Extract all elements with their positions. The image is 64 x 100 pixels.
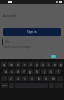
button[interactable]: i — [46, 62, 51, 67]
button[interactable]: , — [9, 83, 14, 88]
button[interactable]: ?123 — [1, 83, 8, 88]
button[interactable]: k — [48, 69, 54, 74]
staticText: l — [58, 70, 59, 74]
staticText: o — [54, 63, 56, 67]
button[interactable]: Send — [51, 55, 56, 58]
staticText: h — [36, 70, 38, 74]
button[interactable]: h — [34, 69, 40, 74]
button[interactable]: c — [22, 76, 28, 81]
staticText: w — [10, 63, 13, 67]
staticText: , — [11, 84, 12, 88]
staticText: x — [17, 77, 19, 81]
button[interactable]: . — [49, 83, 54, 88]
staticText: y — [36, 63, 38, 67]
staticText: Sign in — [27, 30, 37, 34]
staticText: . — [51, 84, 52, 88]
staticText: d — [17, 70, 19, 74]
button[interactable]: b — [36, 76, 42, 81]
staticText: c — [24, 77, 26, 81]
button[interactable]: l — [55, 69, 61, 74]
button[interactable]: p — [58, 62, 63, 67]
staticText: f — [23, 70, 25, 74]
button[interactable]: u — [40, 62, 45, 67]
staticText: p — [60, 63, 62, 67]
button[interactable]: q — [1, 62, 7, 67]
button[interactable]: g — [27, 69, 33, 74]
staticText: Abc — [5, 40, 11, 44]
staticText: e — [17, 63, 19, 67]
staticText: g — [29, 70, 31, 74]
button[interactable]: e — [15, 62, 21, 67]
button[interactable]: y — [34, 62, 39, 67]
staticText: t — [30, 63, 32, 67]
button[interactable]: r — [22, 62, 27, 67]
staticText: Enter your message — [3, 45, 32, 49]
button[interactable]: x — [15, 76, 21, 81]
button[interactable]: Sign in — [3, 28, 61, 36]
staticText: Account — [3, 13, 17, 18]
button[interactable]: v — [29, 76, 35, 81]
button[interactable]: d — [15, 69, 20, 74]
staticText: s — [11, 70, 13, 74]
staticText: z — [10, 77, 12, 81]
button[interactable]: a — [3, 69, 8, 74]
button[interactable]: j — [41, 69, 47, 74]
staticText: n — [45, 77, 47, 81]
button[interactable]: s — [9, 69, 14, 74]
staticText: j — [44, 70, 45, 74]
staticText: a — [5, 70, 7, 74]
button[interactable]: t — [28, 62, 33, 67]
staticText: v — [31, 77, 33, 81]
button[interactable]: z — [8, 76, 14, 81]
staticText: ?123 — [2, 84, 7, 87]
staticText: b — [38, 77, 40, 81]
staticText: i — [48, 63, 49, 67]
button[interactable]: f — [21, 69, 26, 74]
button[interactable]: o — [52, 62, 57, 67]
staticText: m — [52, 77, 55, 81]
button[interactable]: w — [8, 62, 14, 67]
staticText: u — [42, 63, 44, 67]
staticText: q — [3, 63, 5, 67]
button[interactable]: n — [43, 76, 49, 81]
staticText: k — [50, 70, 52, 74]
staticText: r — [24, 63, 26, 67]
button[interactable]: m — [50, 76, 56, 81]
